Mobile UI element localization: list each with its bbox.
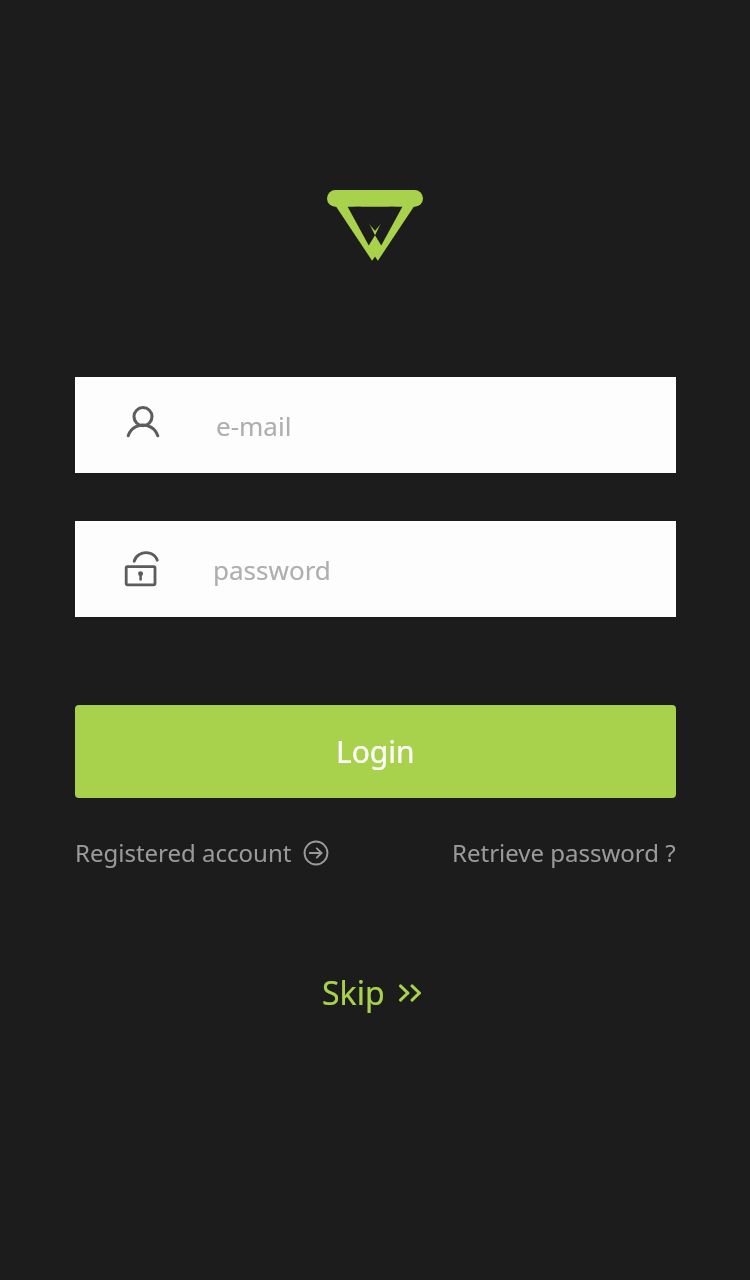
staticText: Skip	[322, 971, 385, 1015]
button[interactable]: Registered account	[75, 828, 329, 877]
other: App logo	[327, 190, 423, 263]
staticText: e-mail	[216, 408, 292, 443]
staticText: Registered account	[75, 836, 292, 869]
button[interactable]: password	[75, 521, 676, 617]
button[interactable]: Retrieve password ?	[452, 828, 676, 877]
button[interactable]: e-mail	[75, 377, 676, 473]
button[interactable]: Skip	[308, 963, 442, 1023]
staticText: Login	[336, 731, 415, 772]
button[interactable]: Login	[75, 705, 676, 798]
staticText: Retrieve password ?	[452, 836, 676, 869]
staticText: password	[213, 552, 331, 587]
